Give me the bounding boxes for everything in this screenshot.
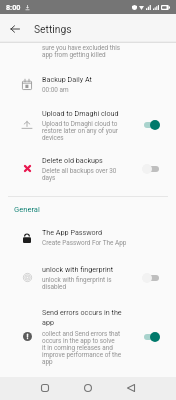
button[interactable]: Toggle on xyxy=(142,119,160,131)
staticText: Backup Daily At xyxy=(42,75,92,83)
staticText: Create Password For The App xyxy=(42,239,127,247)
button[interactable]: Recents xyxy=(29,376,61,399)
staticText: unlock with fingerprint xyxy=(42,265,113,273)
staticText: 00:00 am xyxy=(42,86,69,94)
staticText: Upload to Dmaghi cloud xyxy=(42,109,119,117)
staticText: Upload to Dmaghi cloud to restore later … xyxy=(42,120,118,141)
button[interactable]: Backup Daily At xyxy=(0,75,176,94)
staticText: The App Password xyxy=(42,228,103,236)
button[interactable]: The App Password xyxy=(0,228,176,247)
staticText: General xyxy=(14,205,40,214)
button[interactable]: Upload to Dmaghi cloud xyxy=(0,109,176,141)
button[interactable]: Delete old backups xyxy=(0,156,176,181)
button[interactable]: Send errors occurs in the app xyxy=(0,308,176,365)
button[interactable]: Back xyxy=(4,18,26,40)
staticText: 8:00 xyxy=(6,3,21,11)
button[interactable]: Toggle off xyxy=(142,272,160,284)
button[interactable]: Back xyxy=(115,376,147,399)
staticText: Delete all backups over 30 days xyxy=(42,167,117,181)
button[interactable]: Toggle on xyxy=(142,331,160,343)
button[interactable]: Home xyxy=(72,376,104,399)
staticText: sure you have excluded this app from get… xyxy=(42,44,121,58)
button[interactable]: Toggle off xyxy=(142,163,160,175)
staticText: collect and Send errors that occurs in t… xyxy=(42,330,122,365)
staticText: unlock with fingerprint is disabled xyxy=(42,276,112,290)
staticText: Delete old backups xyxy=(42,156,103,164)
staticText: Settings xyxy=(34,23,72,35)
staticText: Send errors occurs in the app xyxy=(42,308,122,327)
button[interactable]: unlock with fingerprint xyxy=(0,265,176,290)
